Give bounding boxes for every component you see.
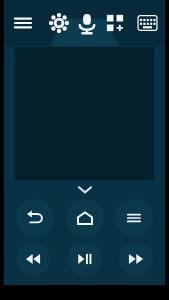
button[interactable]: Back: [16, 199, 54, 237]
button[interactable]: Voice input: [72, 8, 102, 38]
button[interactable]: Fast forward: [119, 242, 153, 276]
button[interactable]: Home: [66, 199, 104, 237]
button[interactable]: Settings: [46, 10, 72, 36]
button[interactable]: Play or pause: [68, 242, 102, 276]
button[interactable]: Apps: [102, 10, 128, 36]
button[interactable]: Rewind: [16, 242, 50, 276]
button[interactable]: Keyboard: [136, 9, 159, 37]
button[interactable]: Menu: [10, 10, 36, 36]
button[interactable]: Expand: [4, 181, 165, 197]
button[interactable]: Recents: [115, 199, 153, 237]
